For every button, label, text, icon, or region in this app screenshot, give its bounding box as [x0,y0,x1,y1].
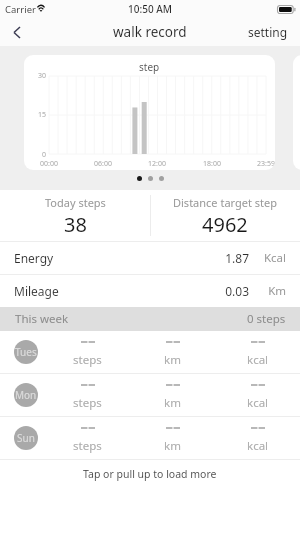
staticText: 38 [64,211,87,238]
staticText: 0 steps [247,311,286,327]
button[interactable]: step [24,55,275,170]
staticText: 06:00 [88,159,118,169]
staticText: Mon [15,388,37,402]
staticText: 10:50 AM [128,2,172,16]
staticText: 0.03 [199,283,249,299]
staticText: walk record [113,23,187,41]
staticText: Sun [17,431,35,445]
button[interactable]: Sun [0,417,300,459]
staticText: 00:00 [34,159,64,169]
staticText: Tap or pull up to load more [83,467,217,481]
staticText: kcal [247,438,269,454]
button[interactable]: Today steps [0,194,150,238]
staticText: 15 [24,110,46,120]
button[interactable]: Tap or pull up to load more [0,460,300,488]
staticText: Tues [15,345,37,359]
staticText: 30 [24,71,46,81]
staticText: Distance target step [173,195,278,210]
staticText: 4962 [202,211,248,238]
staticText: Carrier [5,3,36,16]
staticText: steps [73,438,102,454]
staticText: Kcal [246,250,286,266]
staticText: Km [246,283,286,299]
button[interactable]: Tues [0,331,300,373]
staticText: This week [15,311,69,327]
staticText: steps [73,352,102,368]
staticText: Today steps [45,195,106,210]
button[interactable]: Energy [0,242,300,274]
staticText: km [164,352,181,368]
staticText: 18:00 [197,159,227,169]
staticText: 0 [24,150,46,160]
staticText: Energy [14,250,54,266]
staticText: 12:00 [142,159,172,169]
staticText: km [164,395,181,411]
staticText: setting [248,24,288,40]
button[interactable]: Mileage [0,275,300,307]
staticText: Mileage [14,283,59,299]
staticText: km [164,438,181,454]
button[interactable]: Mon [0,374,300,416]
button[interactable]: setting [240,18,300,46]
staticText: kcal [247,395,269,411]
button[interactable]: Distance target step [150,194,300,238]
staticText: kcal [247,352,269,368]
staticText: step [139,60,160,74]
staticText: 23:59 [251,159,275,169]
staticText: 1.87 [199,250,249,266]
button[interactable]: Back [0,18,40,46]
staticText: steps [73,395,102,411]
